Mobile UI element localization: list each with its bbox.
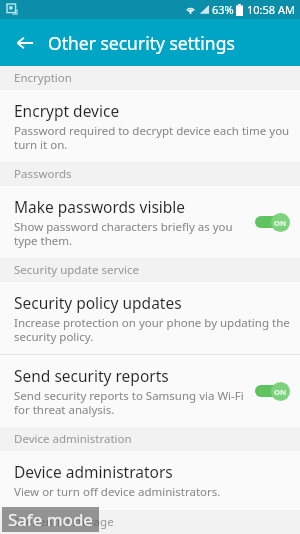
staticText: Credential storage bbox=[14, 514, 114, 530]
staticText: Encryption bbox=[14, 70, 72, 86]
staticText: Safe mode bbox=[8, 508, 93, 531]
staticText: ON bbox=[274, 387, 287, 397]
button[interactable]: Toggle on bbox=[254, 381, 290, 401]
staticText: Security policy updates bbox=[14, 292, 182, 313]
button[interactable]: Make passwords visible bbox=[0, 186, 300, 258]
staticText: ON bbox=[274, 218, 287, 228]
staticText: Send security reports bbox=[14, 365, 169, 386]
button[interactable]: Security policy updates bbox=[0, 282, 300, 354]
button[interactable]: Send security reports bbox=[0, 355, 300, 427]
staticText: Show password characters briefly as you … bbox=[14, 219, 246, 248]
staticText: View or turn off device administrators. bbox=[14, 484, 221, 500]
staticText: Password required to decrypt device each… bbox=[14, 123, 290, 152]
staticText: Encrypt device bbox=[14, 100, 120, 121]
staticText: Increase protection on your phone by upd… bbox=[14, 315, 290, 344]
staticText: 10:58 AM bbox=[247, 2, 295, 17]
button[interactable]: Back bbox=[8, 26, 42, 60]
button[interactable]: Encrypt device bbox=[0, 90, 300, 162]
staticText: Send security reports to Samsung via Wi-… bbox=[14, 388, 246, 417]
button[interactable]: Toggle on bbox=[254, 212, 290, 232]
staticText: Device administration bbox=[14, 431, 132, 447]
staticText: Device administrators bbox=[14, 461, 173, 482]
staticText: Make passwords visible bbox=[14, 196, 186, 217]
staticText: Security update service bbox=[14, 262, 140, 278]
staticText: Passwords bbox=[14, 166, 72, 182]
button[interactable]: Device administrators bbox=[0, 451, 300, 510]
staticText: Other security settings bbox=[48, 31, 235, 55]
staticText: 63% bbox=[212, 2, 234, 17]
